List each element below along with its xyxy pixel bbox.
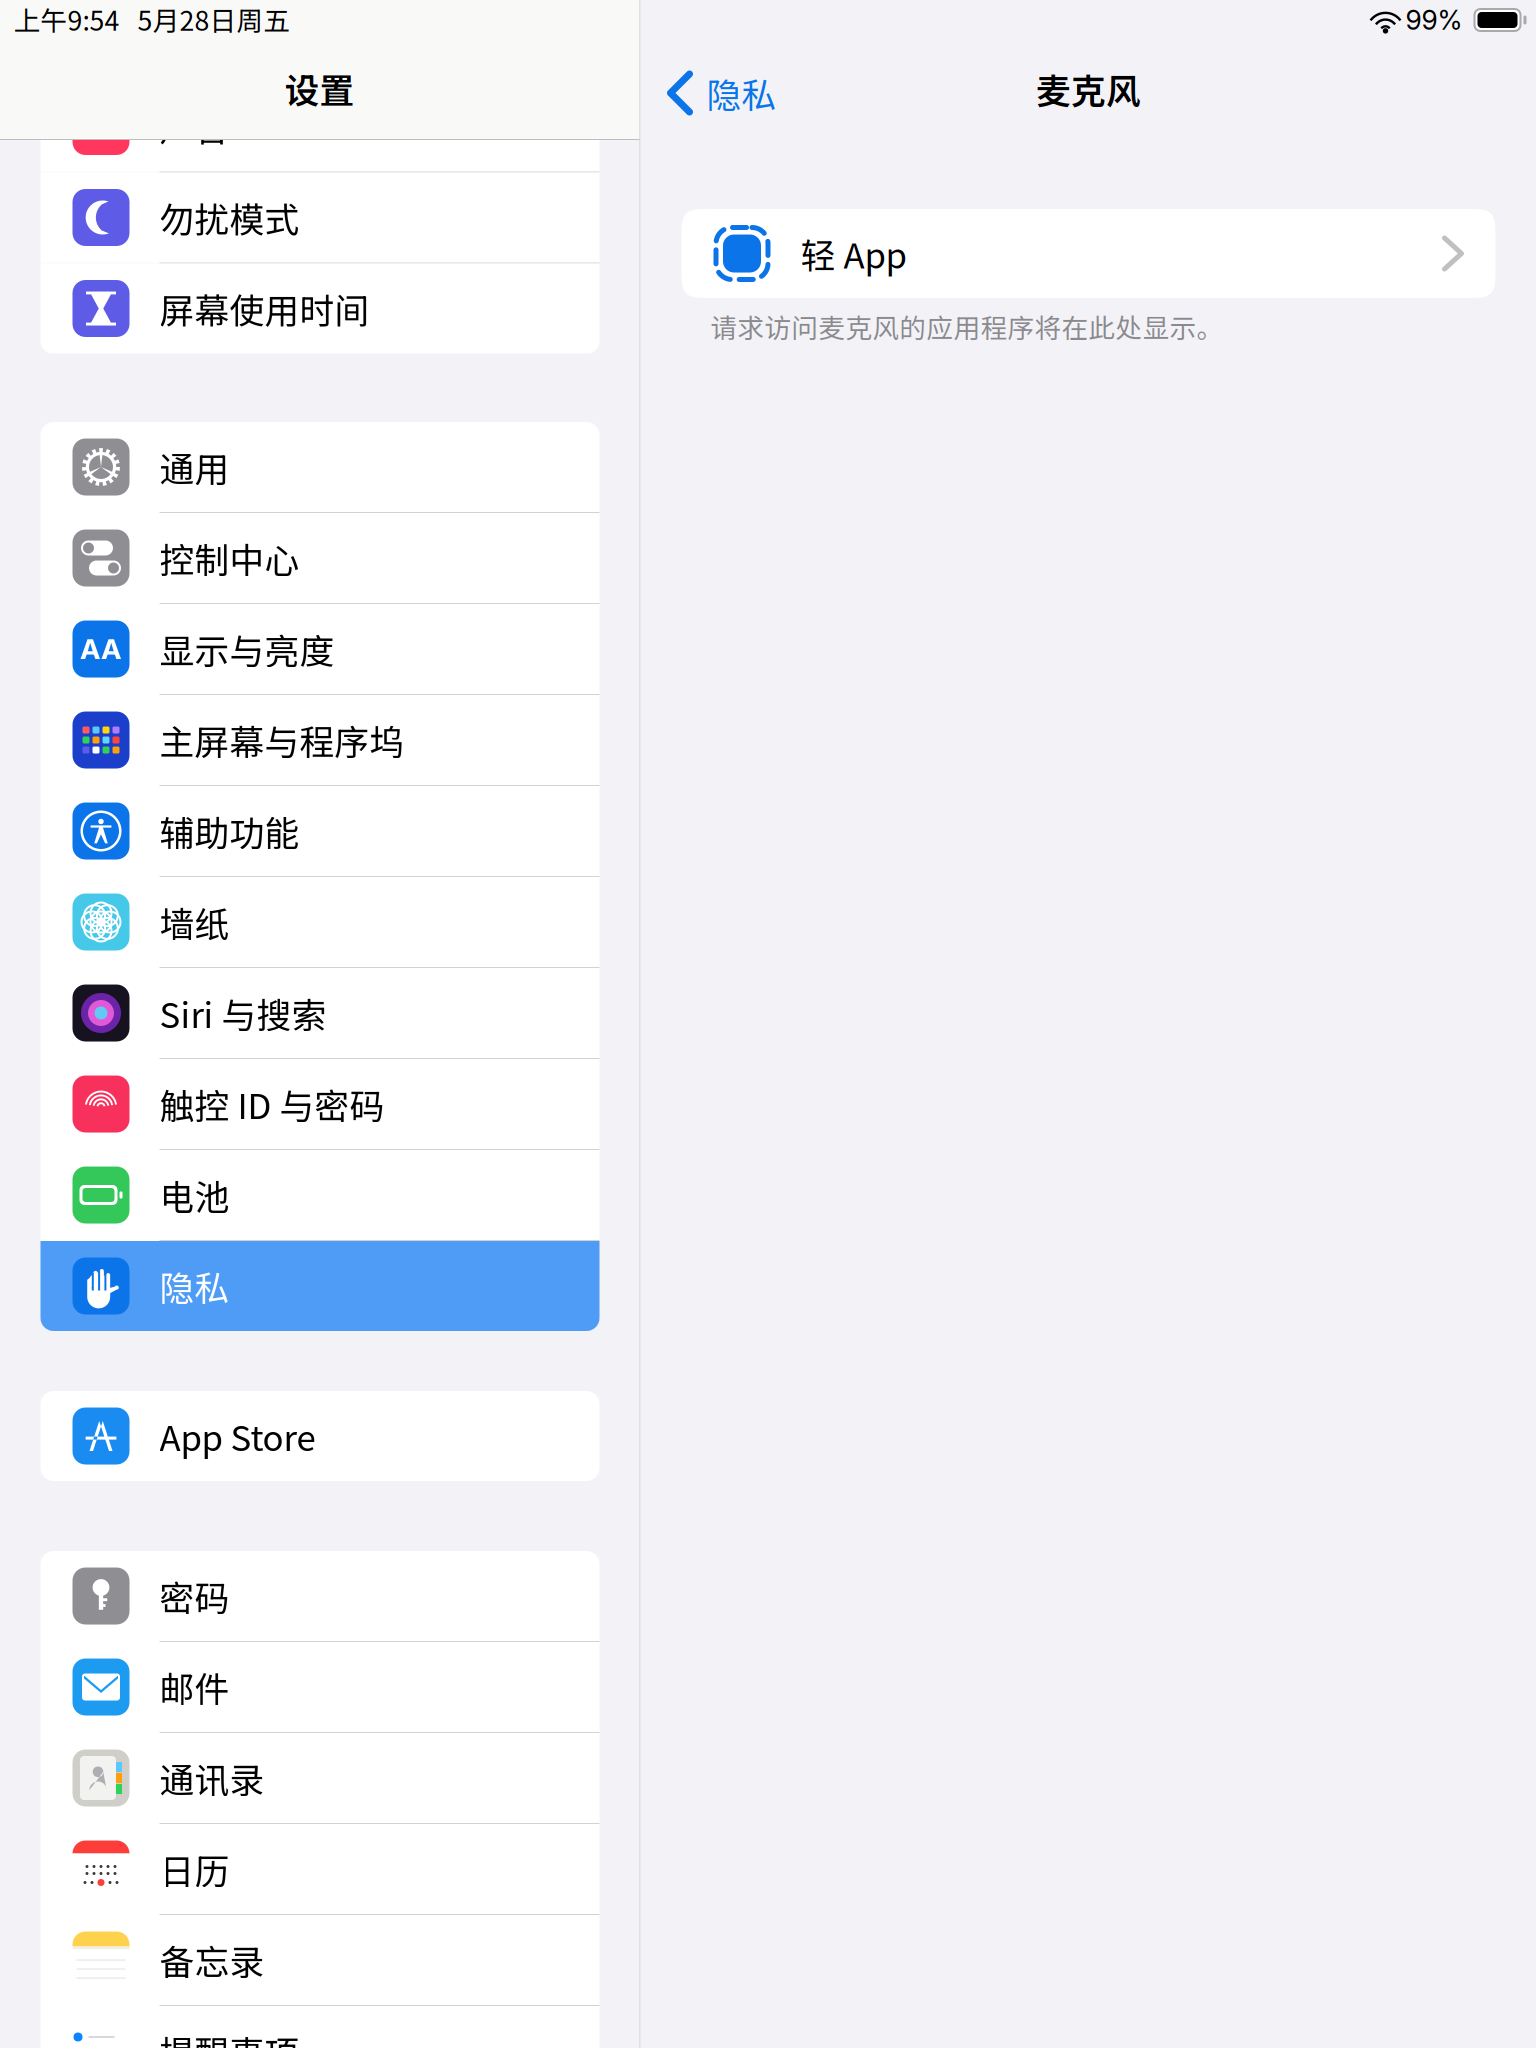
button[interactable]: 日历 xyxy=(40,1824,599,1914)
staticText: App Store xyxy=(159,1411,315,1461)
staticText: 墙纸 xyxy=(159,897,229,947)
button[interactable]: 辅助功能 xyxy=(40,786,599,876)
button[interactable]: 邮件 xyxy=(40,1642,599,1732)
staticText: 辅助功能 xyxy=(159,806,299,856)
button[interactable]: 隐私 xyxy=(40,1241,599,1331)
staticText: 99% xyxy=(1405,4,1462,36)
staticText: 密码 xyxy=(159,1571,229,1621)
staticText: 声音 xyxy=(159,101,229,152)
button[interactable]: 轻 App xyxy=(681,209,1495,298)
staticText: 邮件 xyxy=(159,1662,229,1712)
staticText: 通用 xyxy=(159,442,229,492)
button[interactable]: 密码 xyxy=(40,1551,599,1641)
button[interactable]: 墙纸 xyxy=(40,877,599,967)
button[interactable]: Siri 与搜索 xyxy=(40,968,599,1058)
staticText: 设置 xyxy=(284,63,354,114)
staticText: 显示与亮度 xyxy=(159,624,334,674)
staticText: 屏幕使用时间 xyxy=(159,283,369,334)
staticText: 电池 xyxy=(159,1170,229,1220)
button[interactable]: 勿扰模式 xyxy=(40,172,599,262)
staticText: 勿扰模式 xyxy=(159,192,299,243)
button[interactable]: 控制中心 xyxy=(40,513,599,603)
staticText: 日历 xyxy=(159,1844,229,1894)
staticText: 请求访问麦克风的应用程序将在此处显示。 xyxy=(710,307,1223,346)
button[interactable]: 通用 xyxy=(40,422,599,512)
button[interactable]: 隐私 xyxy=(670,62,850,124)
button[interactable]: 电池 xyxy=(40,1150,599,1240)
staticText: 备忘录 xyxy=(159,1935,264,1985)
staticText: 隐私 xyxy=(159,1261,229,1311)
button[interactable]: AA xyxy=(40,604,599,694)
button[interactable]: 主屏幕与程序坞 xyxy=(40,695,599,785)
staticText: 提醒事项 xyxy=(159,2026,299,2048)
button[interactable]: 触控 ID 与密码 xyxy=(40,1059,599,1149)
staticText: 上午9:54 5月28日周五 xyxy=(13,0,290,38)
button[interactable]: 备忘录 xyxy=(40,1915,599,2005)
button[interactable]: App Store xyxy=(40,1391,599,1481)
staticText: 轻 App xyxy=(800,228,906,279)
staticText: Siri 与搜索 xyxy=(159,988,326,1038)
button[interactable]: 通讯录 xyxy=(40,1733,599,1823)
staticText: AA xyxy=(80,632,122,666)
staticText: 主屏幕与程序坞 xyxy=(159,715,404,765)
staticText: 麦克风 xyxy=(1036,64,1141,114)
staticText: 隐私 xyxy=(706,68,776,118)
staticText: 通讯录 xyxy=(159,1753,264,1803)
button[interactable]: 声音 xyxy=(40,81,599,171)
button[interactable]: 提醒事项 xyxy=(40,2006,599,2048)
staticText: 触控 ID 与密码 xyxy=(159,1079,384,1129)
staticText: 控制中心 xyxy=(159,533,299,583)
button[interactable]: 屏幕使用时间 xyxy=(40,263,599,353)
